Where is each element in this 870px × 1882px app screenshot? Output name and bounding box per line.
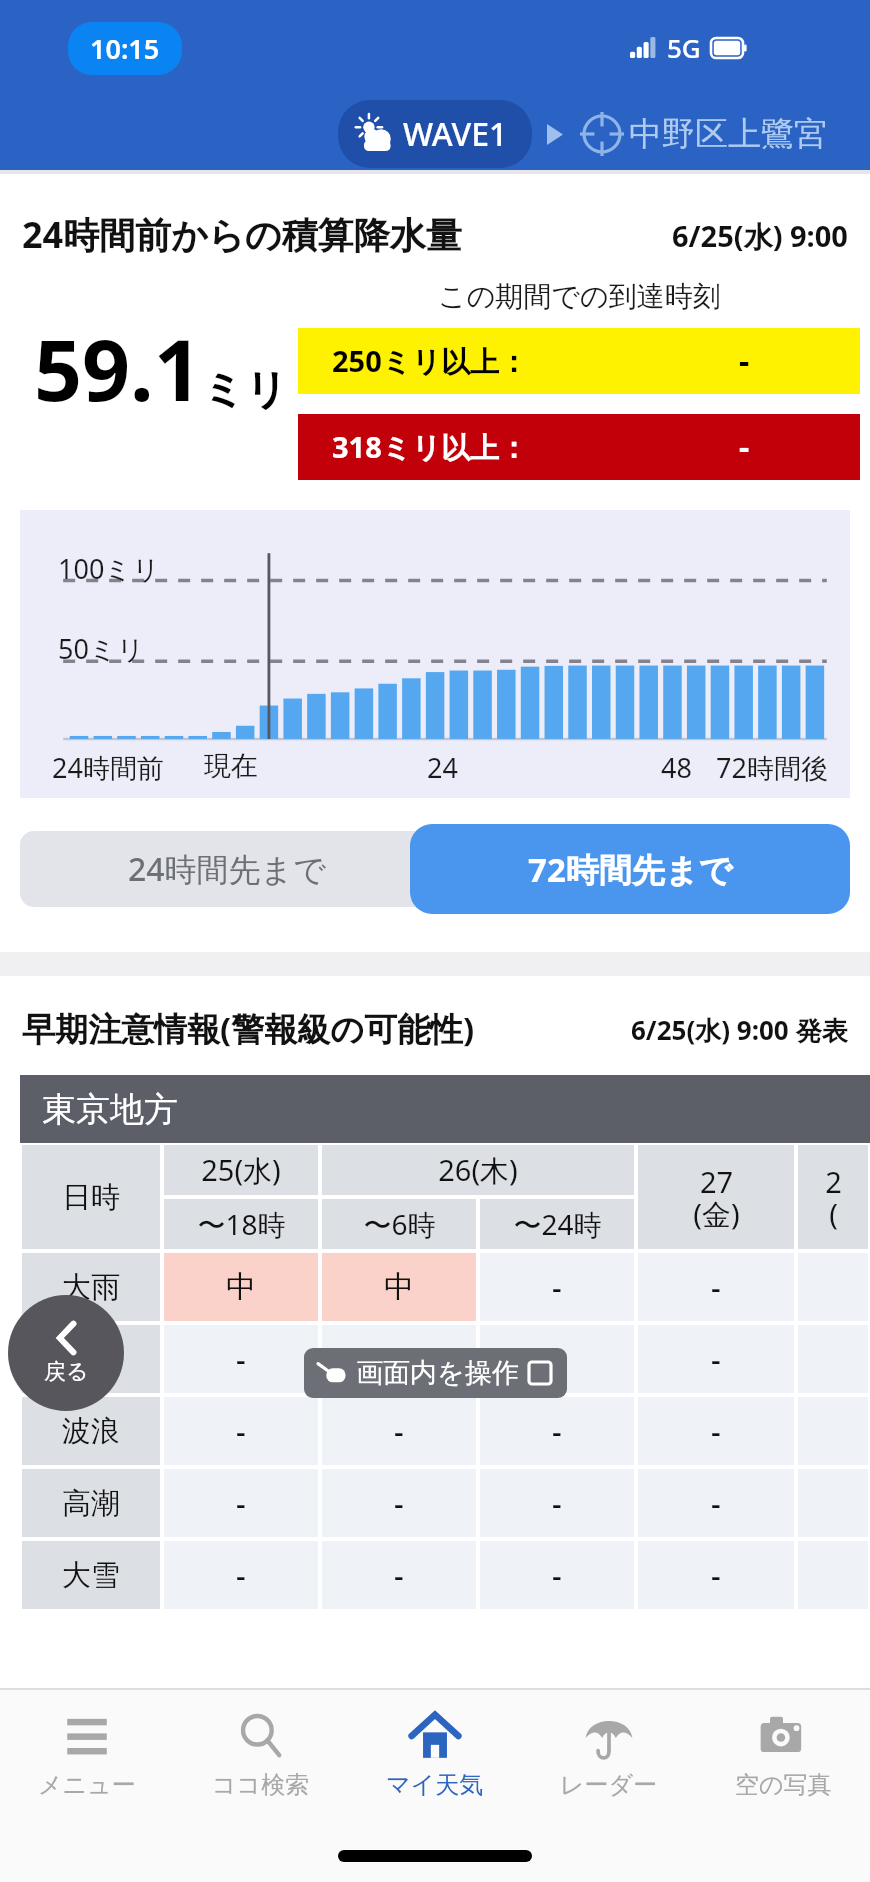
button[interactable]: - (322, 1541, 476, 1609)
staticText: - (236, 1411, 246, 1452)
button[interactable]: - (638, 1253, 794, 1321)
button[interactable]: - (164, 1541, 318, 1609)
staticText: - (711, 1411, 721, 1452)
staticText: - (236, 1483, 246, 1524)
staticText: 25(水) (201, 1150, 281, 1190)
button[interactable]: - (322, 1397, 476, 1465)
staticText: - (394, 1339, 404, 1380)
staticText: - (739, 339, 750, 383)
staticText: 26(木) (438, 1150, 518, 1190)
button[interactable]: - (480, 1253, 634, 1321)
button[interactable]: - (638, 1469, 794, 1537)
button[interactable]: 72時間先まで (410, 824, 850, 914)
staticText: 250ミリ以上： (332, 341, 529, 381)
staticText: 中野区上鷺宮 (629, 113, 827, 155)
button[interactable]: - (480, 1469, 634, 1537)
staticText: 24時間先まで (128, 847, 327, 891)
staticText: 空の写真 (735, 1770, 832, 1800)
staticText: - (711, 1339, 721, 1380)
button[interactable]: - (480, 1325, 634, 1393)
staticText: - (711, 1267, 721, 1308)
button[interactable]: マイ天気 (348, 1690, 522, 1820)
staticText: 現在 (204, 749, 258, 783)
staticText: - (711, 1555, 721, 1596)
staticText: - (552, 1483, 562, 1524)
staticText: 大雪 (62, 1557, 120, 1594)
staticText: - (552, 1411, 562, 1452)
staticText: ココ検索 (212, 1770, 310, 1800)
button[interactable]: WAVE1 (338, 100, 532, 168)
staticText: 24時間前からの積算降水量 (22, 210, 462, 259)
staticText: - (552, 1339, 562, 1380)
staticText: 27 (金) (693, 1162, 740, 1233)
staticText: - (552, 1267, 562, 1308)
staticText: 6/25(水) 9:00 (672, 216, 848, 256)
staticText: 日時 (62, 1179, 120, 1216)
staticText: 6/25(水) 9:00 発表 (631, 1012, 848, 1048)
button[interactable]: - (480, 1397, 634, 1465)
staticText: 画面内を操作 (356, 1356, 519, 1390)
staticText: 318ミリ以上： (332, 427, 529, 467)
staticText: - (394, 1411, 404, 1452)
staticText: 100ミリ (58, 550, 160, 587)
staticText: レーダー (560, 1770, 658, 1800)
staticText: 高潮 (62, 1485, 120, 1522)
staticText: 波浪 (62, 1413, 120, 1450)
staticText: - (236, 1555, 246, 1596)
staticText: 東京地方 (42, 1088, 178, 1131)
staticText: ミリ (202, 364, 288, 417)
staticText: この期間での到達時刻 (438, 279, 721, 314)
staticText: 中 (226, 1268, 256, 1306)
staticText: 〜18時 (197, 1205, 286, 1243)
staticText: メニュー (38, 1770, 136, 1800)
staticText: 2 ( (825, 1162, 842, 1233)
staticText: 72時間後 (716, 749, 828, 786)
staticText: 戻る (44, 1358, 89, 1386)
staticText: 中 (384, 1268, 414, 1306)
button[interactable]: - (322, 1325, 476, 1393)
button[interactable]: - (480, 1541, 634, 1609)
staticText: 早期注意情報(警報級の可能性) (22, 1006, 475, 1051)
button[interactable]: 空の写真 (696, 1690, 870, 1820)
staticText: 24 (427, 749, 458, 786)
button[interactable]: - (638, 1325, 794, 1393)
staticText: 5G (667, 30, 701, 65)
staticText: - (552, 1555, 562, 1596)
button[interactable]: - (638, 1541, 794, 1609)
button[interactable]: 画面内を操作 (304, 1348, 567, 1398)
staticText: - (739, 425, 750, 469)
button[interactable]: - (164, 1469, 318, 1537)
staticText: 48 (661, 749, 692, 786)
staticText: 大雨 (62, 1269, 120, 1306)
staticText: 暴風 (62, 1341, 120, 1378)
button[interactable]: レーダー (522, 1690, 696, 1820)
button[interactable]: - (638, 1397, 794, 1465)
button[interactable]: メニュー (0, 1690, 174, 1820)
button[interactable]: - (164, 1325, 318, 1393)
button[interactable]: 中 (164, 1253, 318, 1321)
button[interactable]: 中 (322, 1253, 476, 1321)
staticText: 〜24時 (513, 1205, 602, 1243)
staticText: 59.1 (34, 311, 202, 425)
staticText: 〜6時 (363, 1205, 436, 1243)
staticText: - (394, 1483, 404, 1524)
button[interactable]: 24時間先まで (20, 831, 850, 907)
staticText: 50ミリ (58, 630, 145, 667)
staticText: 72時間先まで (528, 847, 733, 892)
staticText: - (236, 1339, 246, 1380)
staticText: 10:15 (90, 30, 160, 67)
staticText: WAVE1 (403, 112, 508, 156)
button[interactable]: - (164, 1397, 318, 1465)
button[interactable]: ココ検索 (174, 1690, 348, 1820)
staticText: 24時間前 (52, 749, 164, 786)
button[interactable]: - (322, 1469, 476, 1537)
staticText: - (394, 1555, 404, 1596)
staticText: - (711, 1483, 721, 1524)
button[interactable]: 戻る Back (8, 1295, 124, 1411)
staticText: マイ天気 (386, 1770, 484, 1800)
